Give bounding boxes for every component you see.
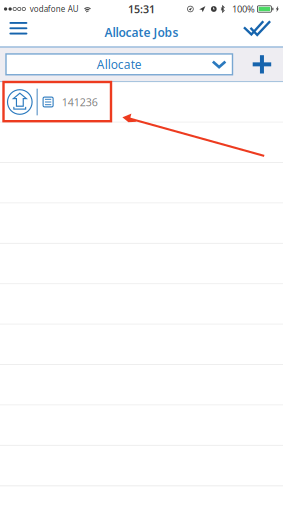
staticText: 141236 (62, 95, 98, 109)
staticText: Allocate (97, 56, 142, 72)
staticText: 100% (232, 3, 255, 15)
staticText: vodafone AU (30, 4, 79, 14)
button[interactable]: Menu (0, 18, 36, 46)
button[interactable]: Mark all complete (235, 18, 283, 47)
button[interactable]: 141236 (0, 82, 283, 122)
staticText: 15:31 (128, 2, 155, 16)
button[interactable]: Add job (232, 51, 283, 77)
button[interactable]: Allocate (6, 54, 232, 75)
staticText: Allocate Jobs (104, 24, 178, 40)
